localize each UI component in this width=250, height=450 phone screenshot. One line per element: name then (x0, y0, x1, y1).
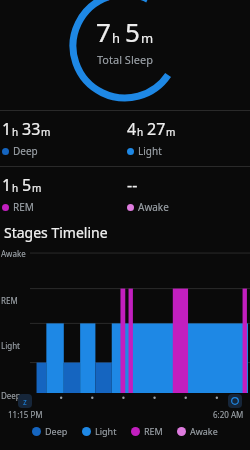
staticText: m (141, 29, 154, 47)
button[interactable]: -- (125, 167, 250, 215)
staticText: 7 (96, 14, 111, 49)
staticText: 6:20 AM (213, 409, 244, 420)
staticText: REM (13, 200, 34, 214)
staticText: REM (1, 295, 18, 306)
staticText: 5 (125, 14, 140, 49)
staticText: 4 (127, 118, 137, 140)
button[interactable]: REM (128, 423, 166, 439)
button[interactable]: Wake alarm (228, 394, 242, 408)
staticText: Deep (1, 390, 21, 401)
button[interactable]: Bedtime (18, 394, 32, 408)
staticText: Deep (13, 144, 38, 158)
button[interactable]: Deep (29, 423, 71, 439)
staticText: h (137, 125, 144, 139)
staticText: 1 (2, 118, 12, 140)
staticText: z (23, 396, 27, 407)
staticText: m (32, 181, 42, 195)
staticText: Light (1, 340, 21, 351)
staticText: m (166, 125, 176, 139)
button[interactable]: 7 (0, 0, 250, 110)
button[interactable]: Awake (174, 423, 221, 439)
staticText: 27 (147, 118, 166, 140)
staticText: Total Sleep (97, 52, 153, 67)
staticText: Light (138, 144, 162, 158)
staticText: Stages Timeline (4, 223, 108, 242)
staticText: 5 (22, 174, 32, 196)
button[interactable]: 1 (0, 111, 124, 166)
staticText: h (112, 29, 121, 47)
staticText: Awake (1, 248, 26, 259)
staticText: Awake (190, 425, 218, 437)
staticText: 33 (22, 118, 41, 140)
staticText: 11:15 PM (8, 409, 43, 420)
button[interactable]: 1 (0, 167, 124, 215)
staticText: Light (95, 425, 117, 437)
staticText: REM (144, 425, 163, 437)
staticText: m (41, 125, 51, 139)
staticText: Awake (138, 200, 169, 214)
staticText: h (12, 125, 19, 139)
button[interactable]: Light (79, 423, 120, 439)
staticText: h (12, 181, 19, 195)
staticText: -- (127, 174, 138, 196)
button[interactable]: 4 (125, 111, 250, 166)
staticText: Deep (45, 425, 68, 437)
staticText: 1 (2, 174, 12, 196)
